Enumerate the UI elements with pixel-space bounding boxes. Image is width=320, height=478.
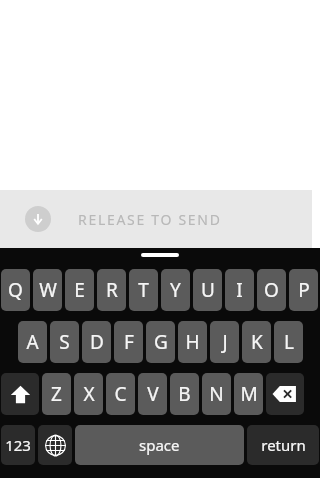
button[interactable]: U (193, 269, 222, 311)
button[interactable]: X (74, 373, 103, 415)
button[interactable]: Y (161, 269, 190, 311)
staticText: Y (170, 277, 181, 303)
staticText: K (251, 329, 263, 355)
staticText: E (74, 277, 85, 303)
button[interactable]: F (114, 321, 143, 363)
button[interactable]: A (18, 321, 47, 363)
staticText: F (124, 329, 134, 355)
staticText: D (90, 329, 104, 355)
button[interactable]: Z (42, 373, 71, 415)
button[interactable]: P (289, 269, 318, 311)
button[interactable]: D (82, 321, 111, 363)
staticText: T (138, 277, 149, 303)
staticText: R (106, 277, 118, 303)
button[interactable]: return (247, 425, 319, 465)
button[interactable]: Shift (1, 373, 39, 415)
staticText: O (264, 277, 279, 303)
button[interactable]: E (65, 269, 94, 311)
staticText: B (178, 381, 191, 407)
button[interactable]: J (210, 321, 239, 363)
button[interactable]: W (33, 269, 62, 311)
button[interactable]: K (242, 321, 271, 363)
staticText: return (261, 435, 306, 455)
button[interactable]: I (225, 269, 254, 311)
button[interactable]: H (178, 321, 207, 363)
staticText: C (114, 381, 127, 407)
button[interactable]: C (106, 373, 135, 415)
staticText: 123 (5, 435, 31, 455)
staticText: H (185, 329, 200, 355)
staticText: L (284, 329, 294, 355)
button[interactable]: space (75, 425, 244, 465)
button[interactable]: R (97, 269, 126, 311)
staticText: P (298, 277, 310, 303)
staticText: RELEASE TO SEND (78, 210, 222, 229)
staticText: A (26, 329, 39, 355)
staticText: I (236, 277, 243, 303)
staticText: Q (8, 277, 23, 303)
staticText: J (222, 329, 228, 355)
staticText: S (59, 329, 70, 355)
button[interactable]: Backspace (266, 373, 304, 415)
staticText: N (209, 381, 224, 407)
button[interactable]: S (50, 321, 79, 363)
staticText: X (83, 381, 95, 407)
button[interactable]: L (274, 321, 303, 363)
staticText: M (240, 381, 258, 407)
button[interactable]: V (138, 373, 167, 415)
staticText: W (39, 277, 57, 303)
button[interactable]: B (170, 373, 199, 415)
button[interactable]: G (146, 321, 175, 363)
button[interactable]: Q (1, 269, 30, 311)
button[interactable]: O (257, 269, 286, 311)
button[interactable]: T (129, 269, 158, 311)
button[interactable]: 123 (1, 425, 35, 465)
staticText: V (147, 381, 159, 407)
staticText: space (139, 435, 180, 455)
button[interactable]: M (234, 373, 263, 415)
staticText: G (154, 329, 168, 355)
other: Release to send (25, 206, 51, 232)
button[interactable]: Change keyboard (38, 425, 72, 465)
button[interactable]: N (202, 373, 231, 415)
button[interactable]: Release to send (0, 190, 320, 248)
staticText: Z (51, 381, 62, 407)
staticText: U (201, 277, 215, 303)
